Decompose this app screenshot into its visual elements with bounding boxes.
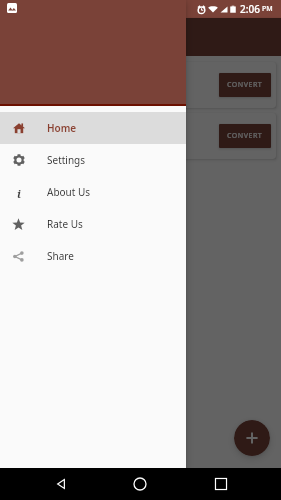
staticText: Settings xyxy=(47,153,86,167)
button[interactable]: CONVERT xyxy=(219,124,271,148)
staticText: CONVERT xyxy=(227,131,263,141)
button[interactable]: Add xyxy=(234,420,270,456)
button[interactable]: Share xyxy=(0,240,186,272)
button[interactable]: Rate Us xyxy=(0,208,186,240)
button[interactable]: Home xyxy=(0,112,186,144)
staticText: CONVERT xyxy=(227,80,263,90)
button[interactable]: Recents xyxy=(209,472,233,496)
staticText: i xyxy=(17,186,21,199)
staticText: 2:06 xyxy=(240,2,260,16)
button[interactable]: Back xyxy=(49,472,73,496)
button[interactable]: i xyxy=(0,176,186,208)
button[interactable]: Home xyxy=(128,472,152,496)
button[interactable]: Settings xyxy=(0,144,186,176)
staticText: Share xyxy=(47,249,74,263)
staticText: About Us xyxy=(47,185,91,199)
staticText: PM xyxy=(262,4,273,14)
staticText: Rate Us xyxy=(47,217,83,231)
staticText: Home xyxy=(47,121,77,135)
button[interactable]: CONVERT xyxy=(219,73,271,97)
